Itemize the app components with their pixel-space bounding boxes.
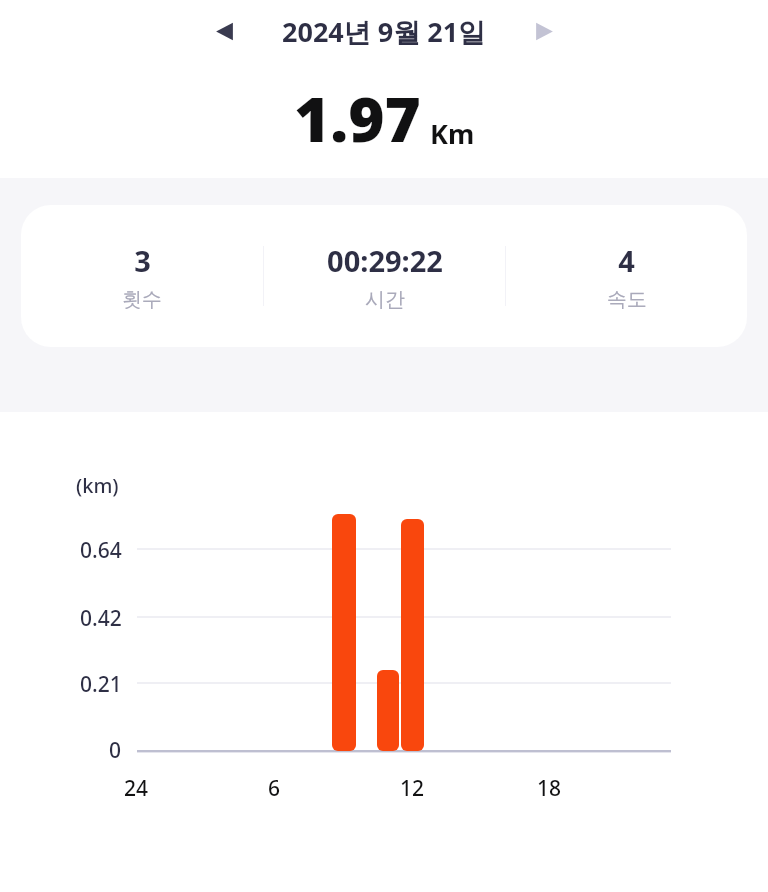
button[interactable]: Next day [520, 7, 568, 55]
staticText: 4 [618, 241, 635, 280]
staticText: 속도 [607, 287, 647, 312]
staticText: (km) [76, 472, 119, 499]
staticText: 18 [537, 774, 562, 803]
staticText: 2024년 9월 21일 [282, 13, 486, 50]
button[interactable]: Previous day [200, 7, 248, 55]
staticText: 1.97 [294, 76, 421, 160]
staticText: 0.21 [80, 670, 122, 699]
button[interactable]: 00:29:22 [264, 241, 505, 312]
staticText: 3 [134, 241, 151, 280]
staticText: 0 [109, 736, 122, 765]
button[interactable]: 4 [506, 241, 747, 312]
staticText: 6 [268, 774, 281, 803]
staticText: Km [430, 115, 475, 152]
staticText: 0.64 [80, 536, 122, 565]
staticText: 횟수 [122, 287, 162, 312]
staticText: 00:29:22 [327, 241, 443, 280]
staticText: 24 [124, 774, 149, 803]
staticText: 0.42 [80, 604, 122, 633]
staticText: 시간 [365, 287, 405, 312]
button[interactable]: 3 [21, 241, 263, 312]
staticText: 12 [400, 774, 425, 803]
button[interactable]: 3 [21, 205, 747, 347]
